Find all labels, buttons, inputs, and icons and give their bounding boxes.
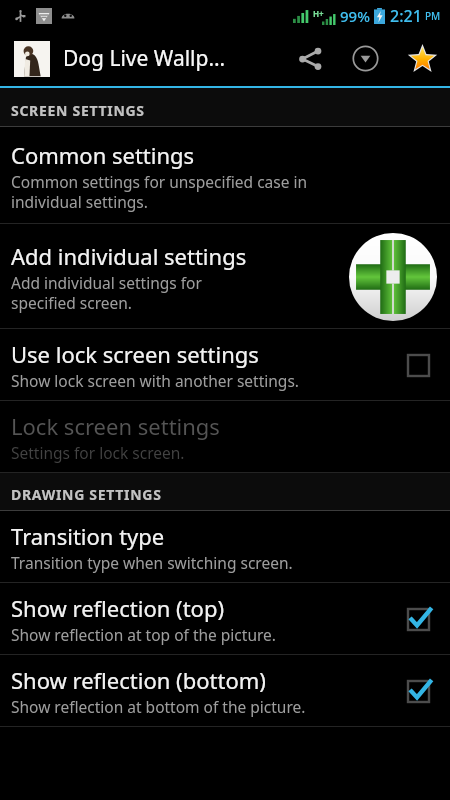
staticText: 2:21 [390, 5, 422, 27]
button[interactable]: More options [336, 31, 394, 86]
button[interactable]: Add individual settings [349, 233, 437, 321]
staticText: Dog Live Wallp… [63, 44, 226, 73]
staticText: Transition type [11, 521, 165, 551]
staticText: Add individual settings for specified sc… [11, 272, 202, 313]
button[interactable]: Checked option [399, 600, 437, 638]
staticText: Show reflection at bottom of the picture… [11, 696, 306, 717]
button[interactable]: Common settings [0, 127, 450, 224]
staticText: Common settings for unspecified case in … [11, 171, 308, 212]
staticText: SCREEN SETTINGS [11, 101, 145, 120]
button[interactable]: Dog Live Wallp… [0, 31, 284, 86]
staticText: Common settings [11, 140, 195, 170]
staticText: DRAWING SETTINGS [11, 485, 162, 504]
staticText: Lock screen settings [11, 411, 220, 441]
staticText: 99% [340, 6, 370, 26]
staticText: Use lock screen settings [11, 339, 259, 369]
staticText: Transition type when switching screen. [11, 552, 293, 573]
button[interactable]: Transition type [0, 511, 450, 583]
button[interactable]: Show reflection (top) [0, 583, 450, 655]
button[interactable]: Use lock screen settings [0, 329, 450, 401]
button[interactable]: Checked option [399, 672, 437, 710]
button[interactable]: Show reflection (bottom) [0, 655, 450, 727]
button[interactable]: Share [284, 31, 336, 86]
staticText: PM [425, 9, 441, 23]
staticText: Show lock screen with another settings. [11, 370, 299, 391]
staticText: Settings for lock screen. [11, 442, 185, 463]
staticText: H+ [313, 8, 324, 19]
button[interactable]: Add individual settings [0, 224, 450, 329]
staticText: Show reflection (bottom) [11, 665, 266, 695]
button[interactable]: Favorite [394, 31, 450, 86]
staticText: Show reflection at top of the picture. [11, 624, 276, 645]
button[interactable]: Lock screen settings [0, 401, 450, 473]
button[interactable]: Unchecked option [399, 346, 437, 384]
staticText: Add individual settings [11, 241, 247, 271]
staticText: Show reflection (top) [11, 593, 225, 623]
